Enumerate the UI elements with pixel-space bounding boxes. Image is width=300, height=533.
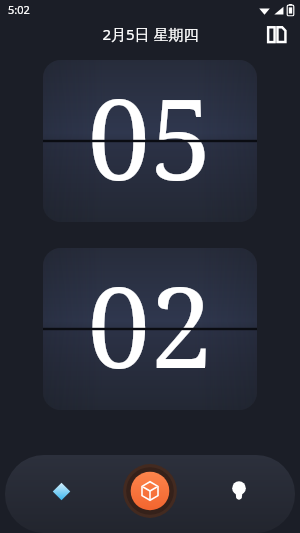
button[interactable]: Add widget	[122, 463, 178, 519]
staticText: 05	[87, 60, 213, 213]
button[interactable]: 02	[43, 248, 257, 410]
staticText: 2月5日 星期四	[102, 24, 199, 44]
staticText: 02	[87, 248, 213, 401]
button[interactable]: Brightness	[215, 467, 263, 515]
button[interactable]: Theme	[37, 467, 85, 515]
button[interactable]: 05	[43, 60, 257, 222]
button[interactable]: Change layout	[261, 19, 291, 49]
staticText: 5:02	[8, 2, 30, 17]
